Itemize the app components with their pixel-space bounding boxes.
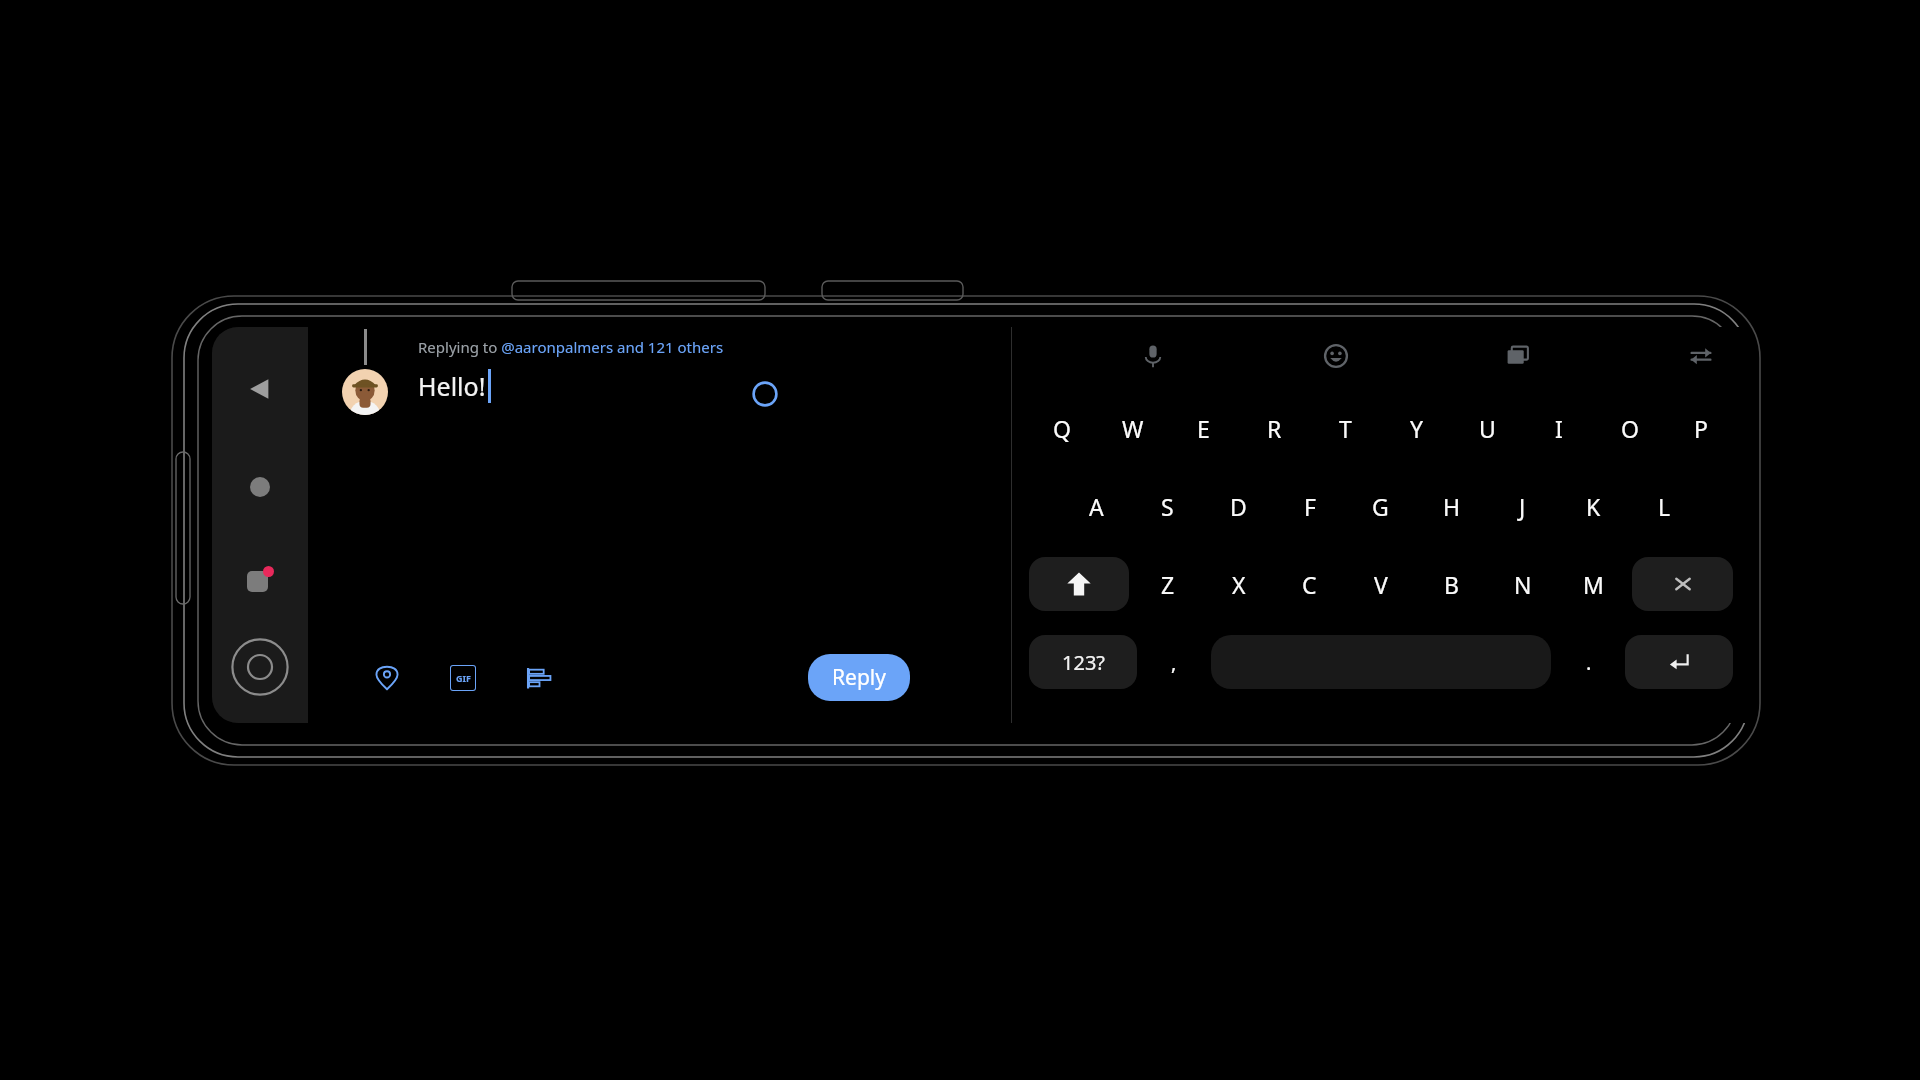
button[interactable]: W [1097, 389, 1168, 467]
staticText: H [1443, 491, 1461, 522]
staticText: T [1339, 413, 1352, 444]
button[interactable]: N [1487, 545, 1558, 623]
staticText: N [1514, 569, 1532, 600]
button[interactable]: Y [1381, 389, 1452, 467]
staticText: Y [1410, 413, 1424, 444]
button[interactable]: O [1594, 389, 1665, 467]
button[interactable]: B [1416, 545, 1487, 623]
button[interactable]: 123? [1029, 635, 1137, 689]
button[interactable]: G [1345, 467, 1416, 545]
staticText: K [1586, 491, 1601, 522]
button[interactable]: Enter [1625, 635, 1733, 689]
button[interactable]: Back [234, 363, 286, 415]
button[interactable]: Insert image [1495, 333, 1541, 379]
button[interactable]: K [1558, 467, 1629, 545]
staticText: GIF [456, 672, 471, 684]
staticText: Replying to @aaronpalmers and 121 others [418, 337, 724, 357]
button[interactable]: Z [1132, 545, 1203, 623]
button[interactable]: , [1140, 623, 1207, 701]
button[interactable]: M [1558, 545, 1629, 623]
button[interactable]: I [1523, 389, 1594, 467]
button[interactable]: Space [1211, 635, 1551, 689]
button[interactable]: Profile photo [342, 369, 388, 415]
button[interactable]: . [1555, 623, 1622, 701]
button[interactable]: P [1665, 389, 1736, 467]
staticText: . [1586, 649, 1592, 676]
button[interactable]: Add poll [516, 655, 562, 701]
staticText: M [1583, 569, 1604, 600]
button[interactable]: Shift [1029, 557, 1129, 611]
staticText: W [1122, 413, 1144, 444]
staticText: Z [1161, 569, 1175, 600]
staticText: Hello! [418, 369, 486, 403]
staticText: A [1089, 491, 1104, 522]
staticText: X [1232, 569, 1246, 600]
button[interactable]: J [1487, 467, 1558, 545]
staticText: , [1171, 649, 1177, 676]
button[interactable]: D [1203, 467, 1274, 545]
staticText: O [1621, 413, 1639, 444]
staticText: J [1519, 491, 1526, 522]
staticText: C [1302, 569, 1317, 600]
staticText: S [1161, 491, 1174, 522]
staticText: D [1230, 491, 1247, 522]
button[interactable]: Assistant [224, 631, 296, 703]
button[interactable]: H [1416, 467, 1487, 545]
button[interactable]: U [1452, 389, 1523, 467]
button[interactable]: Voice input [1130, 333, 1176, 379]
staticText: G [1372, 491, 1389, 522]
staticText: I [1555, 413, 1563, 444]
staticText: R [1267, 413, 1282, 444]
button[interactable]: X [1203, 545, 1274, 623]
button[interactable]: T [1310, 389, 1381, 467]
staticText: L [1658, 491, 1671, 522]
button[interactable]: Reply [808, 654, 910, 701]
button[interactable]: Add GIF [440, 655, 486, 701]
button[interactable]: L [1629, 467, 1700, 545]
staticText: U [1479, 413, 1496, 444]
button[interactable]: Recent apps [234, 555, 286, 607]
button[interactable]: Switch keyboard [1678, 333, 1724, 379]
button[interactable]: V [1345, 545, 1416, 623]
staticText: Reply [832, 663, 886, 692]
staticText: Q [1053, 413, 1071, 444]
staticText: E [1197, 413, 1210, 444]
button[interactable]: C [1274, 545, 1345, 623]
button[interactable]: Emoji [1313, 333, 1359, 379]
staticText: 123? [1062, 649, 1105, 676]
button[interactable]: S [1132, 467, 1203, 545]
button[interactable]: Add location [364, 655, 410, 701]
button[interactable]: A [1061, 467, 1132, 545]
button[interactable]: Home [234, 461, 286, 513]
staticText: P [1694, 413, 1708, 444]
staticText: B [1444, 569, 1459, 600]
button[interactable]: Backspace [1632, 557, 1733, 611]
button[interactable]: E [1168, 389, 1239, 467]
button[interactable]: F [1274, 467, 1345, 545]
staticText: V [1374, 569, 1388, 600]
button[interactable]: Character count [748, 377, 782, 411]
button[interactable]: Q [1026, 389, 1097, 467]
button[interactable]: R [1239, 389, 1310, 467]
staticText: F [1304, 491, 1316, 522]
